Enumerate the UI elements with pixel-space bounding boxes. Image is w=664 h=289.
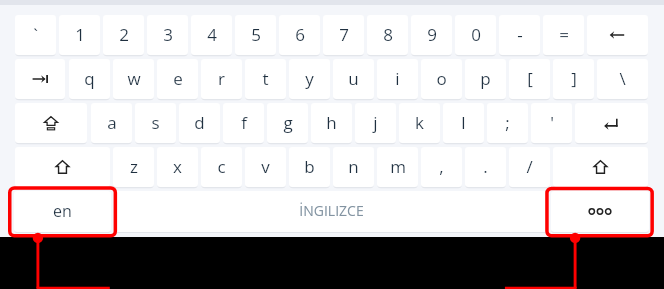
staticText: x xyxy=(173,155,182,178)
staticText: \ xyxy=(619,67,626,90)
staticText: 1 xyxy=(75,23,85,46)
button[interactable]: 1 xyxy=(59,15,100,55)
button[interactable]: d xyxy=(179,103,220,143)
button[interactable]: e xyxy=(157,59,198,99)
button[interactable]: - xyxy=(499,15,540,55)
staticText: 6 xyxy=(295,23,305,46)
button[interactable]: l xyxy=(443,103,484,143)
button[interactable]: g xyxy=(267,103,308,143)
button[interactable]: a xyxy=(91,103,132,143)
staticText: , xyxy=(439,155,444,178)
button[interactable]: . xyxy=(465,147,506,187)
staticText: m xyxy=(390,155,406,178)
staticText: i xyxy=(395,67,400,90)
staticText: 9 xyxy=(427,23,437,46)
button[interactable]: = xyxy=(543,15,584,55)
button[interactable]: 9 xyxy=(411,15,452,55)
button[interactable]: 3 xyxy=(147,15,188,55)
button[interactable]: 7 xyxy=(323,15,364,55)
button[interactable]: v xyxy=(245,147,286,187)
staticText: r xyxy=(218,67,225,90)
button[interactable]: ; xyxy=(487,103,528,143)
button[interactable]: / xyxy=(509,147,550,187)
staticText: z xyxy=(130,155,138,178)
staticText: q xyxy=(84,67,95,90)
button[interactable]: 5 xyxy=(235,15,276,55)
staticText: [ xyxy=(527,67,533,90)
button[interactable]: k xyxy=(399,103,440,143)
button[interactable]: u xyxy=(333,59,374,99)
staticText: s xyxy=(151,111,160,134)
staticText: ; xyxy=(505,111,510,134)
button[interactable]: z xyxy=(113,147,154,187)
staticText: w xyxy=(127,67,141,90)
staticText: f xyxy=(241,111,247,134)
button[interactable]: 2 xyxy=(103,15,144,55)
staticText: d xyxy=(194,111,205,134)
button[interactable]: 0 xyxy=(455,15,496,55)
button[interactable]: , xyxy=(421,147,462,187)
button[interactable]: f xyxy=(223,103,264,143)
button[interactable]: b xyxy=(289,147,330,187)
button[interactable]: Enter xyxy=(575,103,648,143)
button[interactable]: Shift xyxy=(15,147,110,187)
button[interactable]: r xyxy=(201,59,242,99)
staticText: y xyxy=(305,67,314,90)
staticText: ` xyxy=(33,23,38,46)
staticText: u xyxy=(348,67,359,90)
staticText: . xyxy=(483,155,488,178)
staticText: n xyxy=(348,155,359,178)
staticText: / xyxy=(526,155,533,178)
button[interactable]: y xyxy=(289,59,330,99)
button[interactable]: İNGILIZCE xyxy=(115,191,548,232)
button[interactable]: en xyxy=(14,191,111,232)
button[interactable]: x xyxy=(157,147,198,187)
staticText: İNGILIZCE xyxy=(299,201,364,220)
button[interactable]: i xyxy=(377,59,418,99)
button[interactable]: 6 xyxy=(279,15,320,55)
button[interactable]: c xyxy=(201,147,242,187)
staticText: = xyxy=(559,23,569,46)
button[interactable]: o xyxy=(421,59,462,99)
staticText: 4 xyxy=(207,23,217,46)
staticText: 5 xyxy=(251,23,261,46)
staticText: 2 xyxy=(119,23,129,46)
staticText: ' xyxy=(550,111,554,134)
button[interactable]: Caps lock xyxy=(15,103,87,143)
button[interactable]: More options xyxy=(551,191,649,232)
staticText: en xyxy=(53,200,72,222)
button[interactable]: Shift xyxy=(553,147,648,187)
button[interactable]: 4 xyxy=(191,15,232,55)
button[interactable]: p xyxy=(465,59,506,99)
staticText: g xyxy=(283,111,293,134)
button[interactable]: j xyxy=(355,103,396,143)
staticText: 3 xyxy=(163,23,173,46)
button[interactable]: s xyxy=(135,103,176,143)
button[interactable]: h xyxy=(311,103,352,143)
button[interactable]: t xyxy=(245,59,286,99)
button[interactable]: \ xyxy=(597,59,648,99)
button[interactable]: Tab xyxy=(15,59,65,99)
staticText: o xyxy=(436,67,447,90)
button[interactable]: w xyxy=(113,59,154,99)
button[interactable]: q xyxy=(69,59,110,99)
button[interactable]: m xyxy=(377,147,418,187)
staticText: - xyxy=(517,23,523,46)
button[interactable]: 8 xyxy=(367,15,408,55)
staticText: p xyxy=(480,67,491,90)
staticText: t xyxy=(262,67,269,90)
staticText: c xyxy=(217,155,226,178)
staticText: 7 xyxy=(339,23,349,46)
button[interactable]: ' xyxy=(531,103,572,143)
staticText: b xyxy=(304,155,315,178)
staticText: k xyxy=(415,111,424,134)
button[interactable]: n xyxy=(333,147,374,187)
staticText: 8 xyxy=(383,23,393,46)
button[interactable]: ] xyxy=(553,59,594,99)
staticText: l xyxy=(461,111,466,134)
staticText: v xyxy=(261,155,270,178)
button[interactable]: ` xyxy=(15,15,56,55)
staticText: j xyxy=(373,111,378,134)
button[interactable]: Backspace xyxy=(587,15,648,55)
button[interactable]: [ xyxy=(509,59,550,99)
